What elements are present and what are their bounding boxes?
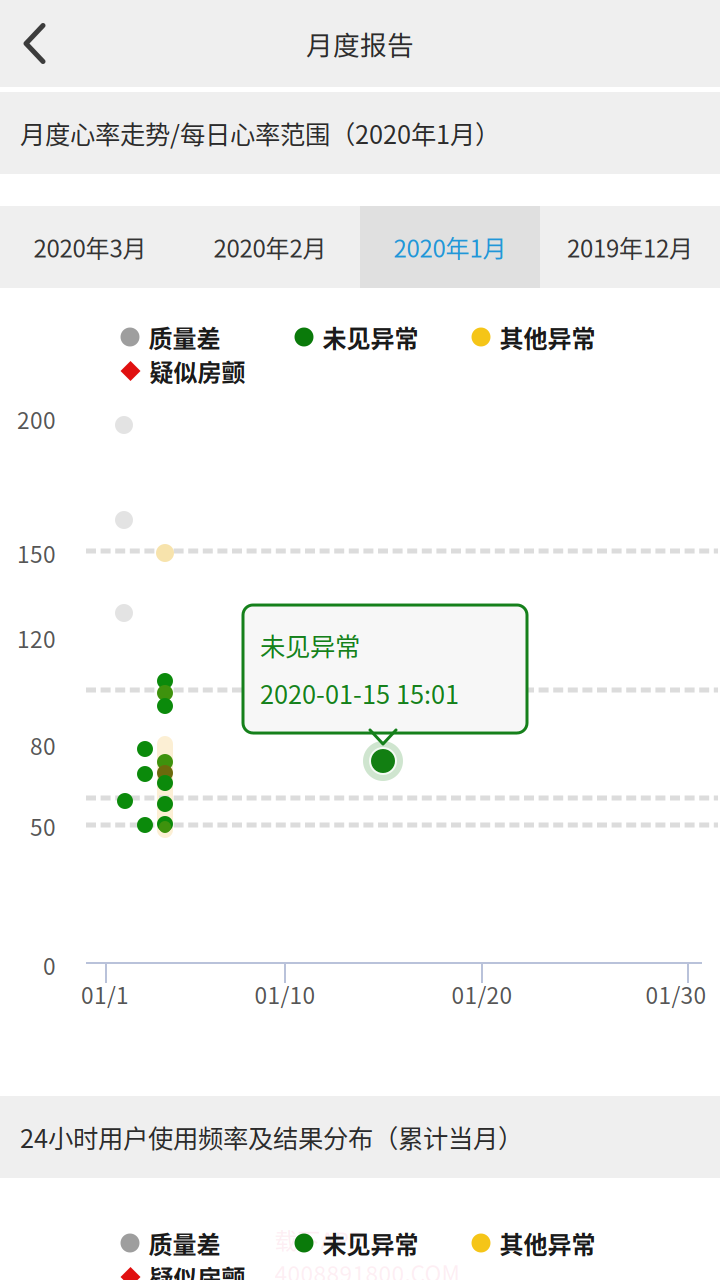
staticText: 120 bbox=[17, 622, 56, 654]
staticText: 其他异常 bbox=[499, 1226, 595, 1260]
staticText: 50 bbox=[30, 810, 56, 842]
staticText: 2020年3月 bbox=[33, 230, 146, 264]
button[interactable]: 2020年2月 bbox=[180, 206, 360, 288]
button[interactable]: 2020年3月 bbox=[0, 206, 180, 288]
staticText: 未见异常 bbox=[322, 1226, 418, 1260]
staticText: 月度心率走势/每日心率范围（2020年1月） bbox=[20, 115, 500, 151]
staticText: 200 bbox=[17, 403, 56, 435]
staticText: 01/10 bbox=[254, 978, 315, 1010]
staticText: 质量差 bbox=[148, 1226, 220, 1260]
staticText: 2019年12月 bbox=[567, 230, 693, 264]
staticText: 2020年1月 bbox=[393, 230, 506, 264]
staticText: 01/20 bbox=[451, 978, 512, 1010]
staticText: 载下APP · 4008891800.COM bbox=[274, 1223, 459, 1280]
staticText: 0 bbox=[43, 949, 56, 981]
staticText: 其他异常 bbox=[499, 320, 595, 354]
button[interactable]: 2019年12月 bbox=[540, 206, 720, 288]
button[interactable]: 2020年1月 bbox=[360, 206, 540, 288]
staticText: 2020-01-15 15:01 bbox=[260, 675, 459, 711]
staticText: 24小时用户使用频率及结果分布（累计当月） bbox=[20, 1119, 523, 1155]
staticText: 150 bbox=[17, 537, 56, 569]
staticText: 80 bbox=[30, 729, 56, 761]
staticText: 质量差 bbox=[148, 320, 220, 354]
button[interactable]: Back bbox=[0, 0, 71, 87]
staticText: 未见异常 bbox=[260, 627, 360, 663]
staticText: 2020年2月 bbox=[213, 230, 326, 264]
staticText: 01/30 bbox=[645, 978, 706, 1010]
button[interactable]: 未见异常 bbox=[243, 605, 527, 733]
staticText: 未见异常 bbox=[322, 320, 418, 354]
staticText: 疑似房颤 bbox=[149, 354, 245, 388]
staticText: 01/1 bbox=[81, 978, 129, 1010]
staticText: 疑似房颤 bbox=[149, 1260, 245, 1280]
staticText: 月度报告 bbox=[306, 24, 414, 63]
